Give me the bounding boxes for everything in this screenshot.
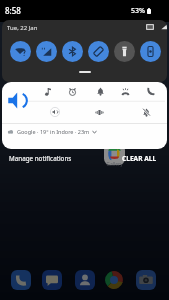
button[interactable]: Contacts [75,270,95,290]
staticText: Gallery [104,161,125,168]
button[interactable]: Camera [136,270,156,290]
button[interactable]: Call volume [144,85,156,97]
button[interactable]: Vibrate [93,106,105,118]
staticText: Tue, 22 Jan [7,24,38,32]
button[interactable]: Media volume [2,82,167,149]
button[interactable]: CLEAR ALL [122,154,157,163]
button[interactable]: Manage notifications [9,154,72,163]
button[interactable]: Output device [49,106,61,118]
button[interactable]: Chrome [104,270,124,290]
button[interactable]: Notification volume [94,85,106,97]
button[interactable]: Auto-rotate [88,41,109,62]
staticText: 8:58 [5,5,21,16]
button[interactable]: Messages [42,270,62,290]
button[interactable]: Ring volume [119,85,131,97]
button[interactable]: Phone [11,270,31,290]
button[interactable]: Bluetooth [62,41,83,62]
button[interactable]: Mute [140,106,152,118]
staticText: Google · 19° in Indore · 23m [17,128,90,135]
button[interactable]: Wi-Fi [10,41,31,62]
button[interactable]: Media volume [42,85,54,97]
staticText: CLEAR ALL [122,154,157,163]
button[interactable]: Mobile data [36,41,57,62]
button[interactable]: Flashlight [114,41,135,62]
button[interactable]: Gallery [104,144,125,165]
staticText: 53% [131,6,145,16]
button[interactable]: Alarm volume [66,85,78,97]
button[interactable]: Cast [140,41,161,62]
staticText: Manage notifications [9,154,72,163]
